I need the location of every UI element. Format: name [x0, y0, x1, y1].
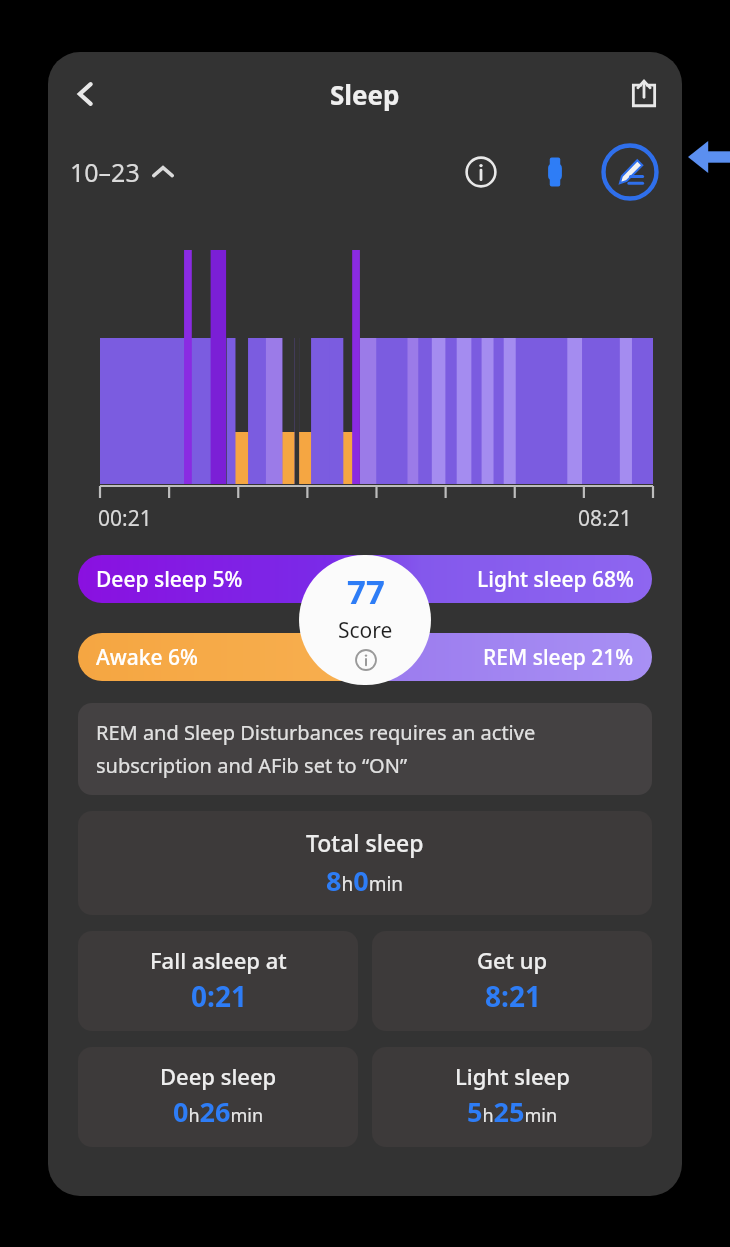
- button[interactable]: Share: [618, 68, 670, 120]
- button[interactable]: Fall asleep at: [78, 931, 358, 1031]
- staticText: REM and Sleep Disturbances requires an a…: [96, 719, 536, 746]
- staticText: subscription and AFib set to “ON”: [96, 752, 408, 779]
- staticText: Deep sleep 5%: [96, 565, 243, 594]
- staticText: 10–23: [70, 155, 140, 189]
- staticText: 5h25min: [467, 1093, 558, 1130]
- staticText: Get up: [477, 945, 548, 975]
- button[interactable]: Edit: [600, 142, 660, 202]
- staticText: 00:21: [98, 504, 152, 533]
- staticText: 8h0min: [326, 862, 404, 899]
- staticText: 8:21: [485, 977, 541, 1015]
- button[interactable]: Get up: [372, 931, 652, 1031]
- button[interactable]: 10–23: [70, 155, 174, 189]
- staticText: Score: [338, 616, 393, 645]
- button[interactable]: REM and Sleep Disturbances requires an a…: [78, 703, 652, 795]
- staticText: Deep sleep: [160, 1061, 277, 1091]
- staticText: Awake 6%: [96, 643, 198, 672]
- button[interactable]: Information: [458, 149, 504, 195]
- staticText: 77: [347, 569, 385, 614]
- staticText: 0:21: [191, 977, 247, 1015]
- button[interactable]: Watch: [532, 149, 578, 195]
- button[interactable]: Deep sleep: [78, 1047, 358, 1147]
- staticText: 0h26min: [173, 1093, 264, 1130]
- staticText: 08:21: [578, 504, 632, 533]
- button[interactable]: Total sleep: [78, 811, 652, 915]
- staticText: Sleep: [330, 77, 400, 112]
- staticText: Light sleep 68%: [477, 565, 634, 594]
- button[interactable]: Light sleep: [372, 1047, 652, 1147]
- staticText: Total sleep: [306, 827, 424, 858]
- staticText: REM sleep 21%: [483, 643, 634, 672]
- staticText: Light sleep: [455, 1061, 570, 1091]
- button[interactable]: 77: [299, 555, 431, 685]
- button[interactable]: Back: [58, 66, 114, 122]
- button[interactable]: Deep sleep 5%: [78, 555, 652, 603]
- button[interactable]: Awake 6%: [78, 633, 652, 681]
- staticText: Fall asleep at: [150, 945, 287, 975]
